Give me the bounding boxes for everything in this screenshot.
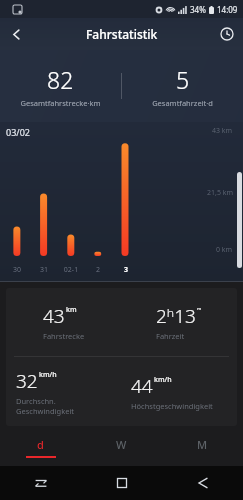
staticText: ᵐ: [197, 305, 202, 315]
staticText: Höchstgeschwindigkeit: [131, 401, 213, 411]
staticText: km/h: [39, 370, 57, 380]
staticText: 32: [16, 368, 38, 394]
staticText: 82: [47, 64, 74, 95]
staticText: 03/02: [6, 126, 30, 138]
staticText: Fahrstatistik: [86, 26, 158, 42]
button[interactable]: Back: [0, 18, 32, 50]
button[interactable]: 32: [6, 357, 121, 426]
button[interactable]: 43: [6, 288, 121, 356]
button[interactable]: Home: [81, 466, 162, 500]
staticText: 2: [87, 265, 109, 275]
staticText: 43: [43, 303, 65, 329]
staticText: 30: [6, 265, 28, 275]
staticText: Fahrstrecke: [43, 331, 85, 341]
staticText: 21,5 km: [207, 188, 233, 198]
staticText: 44: [131, 373, 153, 399]
staticText: 14:09: [217, 4, 238, 15]
staticText: 43 km: [212, 126, 233, 136]
staticText: d: [37, 437, 44, 452]
staticText: 2ʰ13: [156, 303, 196, 329]
button[interactable]: 2ʰ13: [121, 288, 237, 356]
button[interactable]: W: [81, 430, 162, 464]
button[interactable]: Back: [162, 466, 243, 500]
staticText: Durchschn. Geschwindigkeit: [16, 396, 111, 416]
button[interactable]: M: [162, 430, 243, 464]
button[interactable]: 44: [121, 357, 237, 426]
staticText: 5: [176, 64, 190, 95]
staticText: 34%: [190, 4, 206, 15]
staticText: 31: [33, 265, 55, 275]
button[interactable]: Recents: [0, 466, 81, 500]
button[interactable]: 5: [122, 50, 243, 122]
staticText: M: [197, 437, 208, 452]
staticText: 3: [115, 265, 137, 275]
staticText: km: [66, 305, 77, 315]
staticText: 0 km: [216, 245, 233, 255]
button[interactable]: History: [211, 18, 243, 50]
staticText: 02-1: [60, 265, 82, 275]
staticText: Gesamtfahrstrecke·km: [20, 98, 101, 108]
staticText: km/h: [154, 375, 172, 385]
button[interactable]: 82: [0, 50, 121, 122]
staticText: Gesamtfahrzeit·d: [152, 98, 213, 108]
staticText: W: [116, 437, 127, 452]
staticText: Fahrzeit: [156, 331, 185, 341]
button[interactable]: d: [0, 430, 81, 464]
